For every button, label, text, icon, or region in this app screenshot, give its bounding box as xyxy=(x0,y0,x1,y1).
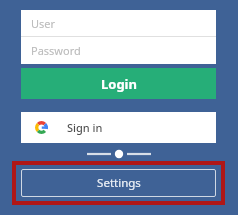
button[interactable]: Password xyxy=(21,37,216,64)
staticText: Settings xyxy=(97,175,141,191)
button[interactable]: User xyxy=(21,10,216,36)
staticText: Password xyxy=(31,43,81,58)
button[interactable]: Settings xyxy=(21,169,216,197)
button[interactable]: Login xyxy=(21,68,216,99)
staticText: User xyxy=(31,16,56,31)
staticText: Login xyxy=(101,75,137,93)
button[interactable]: Sign in xyxy=(21,112,216,143)
staticText: Sign in xyxy=(67,120,103,135)
button[interactable]: Slider xyxy=(85,148,153,160)
